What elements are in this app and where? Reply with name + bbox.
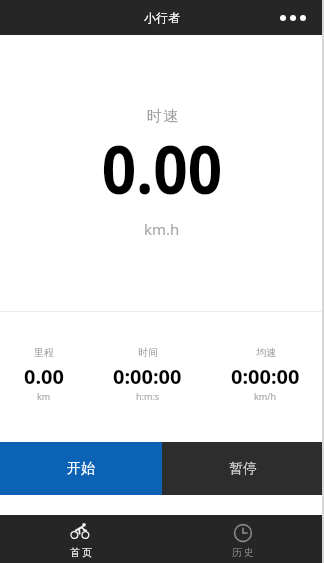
staticText: 时间 (138, 346, 158, 359)
button[interactable]: More options (262, 0, 324, 35)
staticText: 0:00:00 (113, 363, 182, 390)
staticText: 0:00:00 (231, 363, 300, 390)
button[interactable]: 历史 (162, 515, 324, 563)
staticText: 0.00 (24, 363, 64, 390)
staticText: 暂停 (229, 460, 257, 478)
button[interactable]: 暂停 (162, 442, 324, 495)
staticText: 首页 (69, 546, 93, 559)
staticText: km (37, 390, 51, 402)
staticText: km.h (144, 219, 180, 239)
button[interactable]: 开始 (0, 442, 162, 495)
staticText: 历史 (231, 546, 255, 559)
staticText: 开始 (67, 460, 95, 478)
staticText: 均速 (256, 346, 276, 359)
staticText: 里程 (34, 346, 54, 359)
staticText: 小行者 (144, 10, 180, 25)
button[interactable]: 首页 (0, 515, 162, 563)
staticText: 0.00 (102, 122, 222, 213)
staticText: 时速 (146, 107, 179, 126)
staticText: km/h (254, 390, 277, 402)
staticText: h:m:s (136, 390, 160, 402)
